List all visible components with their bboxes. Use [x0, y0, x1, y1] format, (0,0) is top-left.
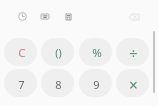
button[interactable]: ×	[116, 69, 149, 97]
button[interactable]: Calculator	[60, 8, 77, 25]
staticText: ()	[55, 46, 62, 60]
button[interactable]: History	[14, 8, 31, 25]
button[interactable]: ()	[41, 38, 74, 66]
button[interactable]: 9	[79, 69, 112, 97]
button[interactable]: C	[4, 38, 37, 66]
staticText: ÷	[129, 43, 138, 63]
button[interactable]: Keypad	[36, 8, 53, 25]
button[interactable]: ÷	[116, 38, 149, 66]
button[interactable]: 8	[41, 69, 74, 97]
staticText: 8	[55, 77, 62, 92]
button[interactable]: %	[79, 38, 112, 66]
staticText: 9	[93, 77, 100, 92]
staticText: C	[18, 45, 26, 61]
button[interactable]: 7	[4, 69, 37, 97]
button[interactable]: Backspace	[125, 8, 142, 25]
staticText: 7	[18, 77, 25, 92]
staticText: ×	[129, 74, 138, 95]
staticText: %	[92, 45, 102, 61]
